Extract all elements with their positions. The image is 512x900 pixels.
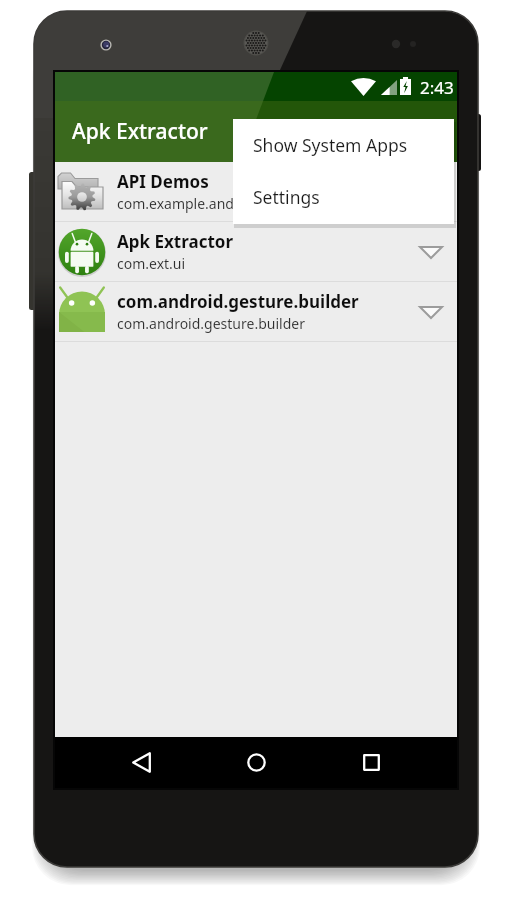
button[interactable]: com.android.gesture.builder bbox=[55, 282, 457, 341]
staticText: Apk Extractor bbox=[72, 117, 208, 146]
button[interactable]: Expand bbox=[411, 294, 451, 330]
button[interactable]: Home bbox=[227, 737, 285, 788]
staticText: com.ext.ui bbox=[117, 254, 186, 273]
staticText: com.android.gesture.builder bbox=[117, 290, 359, 313]
button[interactable]: Show System Apps bbox=[233, 119, 454, 171]
button[interactable]: API Demos bbox=[55, 162, 457, 221]
button[interactable]: Expand bbox=[411, 234, 451, 270]
button[interactable]: Settings bbox=[233, 171, 454, 223]
button[interactable]: Back bbox=[112, 737, 170, 788]
staticText: com.android.gesture.builder bbox=[117, 314, 305, 333]
button[interactable]: Recents bbox=[342, 737, 400, 788]
staticText: 2:43 bbox=[420, 76, 454, 99]
staticText: Settings bbox=[253, 185, 320, 209]
staticText: API Demos bbox=[117, 170, 209, 193]
staticText: Apk Extractor bbox=[117, 230, 234, 253]
button[interactable]: Apk Extractor bbox=[55, 222, 457, 281]
staticText: com.example.android.apis bbox=[117, 194, 291, 213]
staticText: Show System Apps bbox=[253, 133, 408, 157]
